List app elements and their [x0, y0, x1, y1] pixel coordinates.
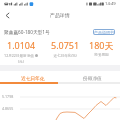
staticText: 12月22日最新净值 — [4, 53, 34, 58]
button[interactable]: 近七日年化 — [0, 72, 60, 83]
staticText: 180天 — [89, 39, 114, 51]
staticText: 5.0751 — [51, 39, 80, 51]
staticText: 4.8655 — [2, 106, 14, 111]
staticText: 份额净值 — [83, 75, 102, 81]
staticText: 近七日年化 — [21, 75, 45, 81]
button[interactable]: 份额净值 — [60, 72, 120, 83]
staticText: 产品说明书 — [94, 30, 114, 35]
staticText: 投资周期 — [94, 53, 109, 58]
button[interactable]: 产品说明书 — [93, 29, 115, 35]
staticText: 产品详情 — [50, 12, 70, 18]
staticText: 聚鑫赢60-180天型1号 — [4, 29, 50, 35]
button[interactable]: Back — [1, 9, 13, 21]
staticText: 近七日年化(%) — [53, 53, 77, 58]
staticText: 5.1798 — [2, 94, 14, 99]
staticText: 1.0104 — [7, 39, 36, 51]
staticText: 14:49 — [105, 1, 116, 7]
staticText: (元) — [18, 59, 24, 64]
